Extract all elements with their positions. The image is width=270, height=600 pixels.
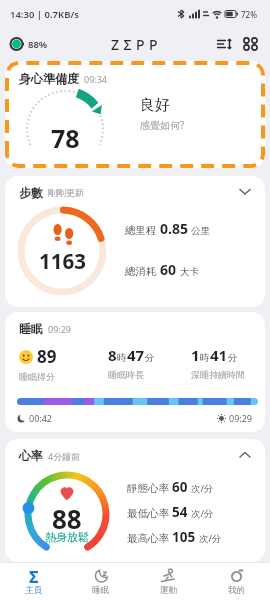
staticText: 4分鐘前 — [48, 450, 81, 462]
staticText: 105 — [172, 528, 196, 546]
button[interactable]: 睡眠 — [67, 563, 134, 600]
staticText: 主頁 — [25, 585, 42, 596]
staticText: 09:29 — [48, 323, 72, 335]
staticText: 總里程 — [125, 224, 157, 237]
button[interactable]: 我的 — [202, 563, 270, 600]
staticText: 00:42 — [29, 412, 53, 424]
button[interactable] — [216, 37, 233, 51]
staticText: 0.85 — [160, 219, 188, 238]
staticText: 1163 — [39, 247, 86, 271]
button[interactable]: Σ — [0, 563, 67, 600]
staticText: 41 — [210, 345, 228, 365]
staticText: 睡眠 — [92, 585, 109, 596]
staticText: 總消耗 — [125, 265, 157, 278]
staticText: 次/分 — [191, 507, 214, 520]
button[interactable]: 運動 — [134, 563, 202, 600]
staticText: 睡眠時長 — [108, 369, 144, 380]
staticText: 60 — [172, 478, 188, 496]
staticText: 8 — [108, 345, 117, 365]
button[interactable]: 88% — [10, 37, 48, 51]
staticText: 睡眠 — [19, 321, 43, 336]
staticText: 公里 — [191, 225, 210, 237]
staticText: 分 — [228, 352, 238, 364]
staticText: 剛剛更新 — [48, 187, 84, 198]
staticText: 感覺如何? — [140, 118, 185, 132]
staticText: Σ — [29, 566, 39, 585]
staticText: 88 — [52, 501, 82, 531]
staticText: 身心準備度 — [19, 71, 79, 86]
staticText: 最低心率 — [127, 507, 169, 520]
button[interactable] — [239, 188, 251, 196]
button[interactable]: 心率 — [5, 439, 265, 562]
button[interactable] — [239, 451, 251, 459]
staticText: 時 — [200, 352, 210, 364]
staticText: 次/分 — [191, 482, 214, 495]
staticText: 運動 — [160, 585, 177, 596]
button[interactable] — [243, 37, 258, 51]
staticText: 72% — [241, 9, 257, 20]
button[interactable]: 睡眠 — [5, 312, 265, 432]
staticText: 89 — [37, 345, 57, 368]
staticText: 09:34 — [84, 73, 108, 85]
staticText: 靜態心率 — [127, 482, 169, 495]
staticText: 良好 — [140, 96, 170, 115]
staticText: 我的 — [228, 585, 245, 596]
staticText: 步數 — [19, 185, 43, 200]
staticText: ZΣPP — [111, 35, 163, 54]
button[interactable]: 步數 — [5, 176, 265, 307]
staticText: 88% — [28, 38, 48, 51]
staticText: 大卡 — [180, 266, 199, 278]
staticText: 60 — [160, 260, 177, 279]
staticText: 深睡持續時間 — [191, 369, 245, 380]
staticText: 心率 — [19, 448, 43, 463]
staticText: 分 — [145, 352, 155, 364]
button[interactable]: 身心準備度 — [5, 61, 265, 168]
staticText: 09:29 — [229, 412, 253, 424]
staticText: 78 — [51, 121, 80, 155]
staticText: 14:30 | 0.7KB/s — [10, 8, 79, 21]
staticText: 時 — [117, 352, 127, 364]
staticText: 47 — [127, 345, 145, 365]
staticText: 熱身放鬆 — [45, 530, 89, 544]
staticText: 54 — [172, 503, 188, 521]
staticText: 最高心率 — [127, 532, 169, 545]
staticText: 睡眠得分 — [19, 371, 55, 382]
staticText: 1 — [191, 345, 200, 365]
staticText: 次/分 — [199, 532, 222, 545]
